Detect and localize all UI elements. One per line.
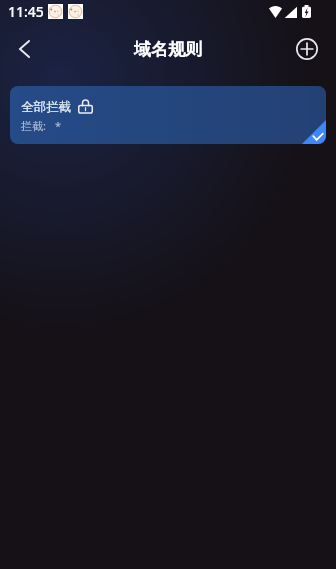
button[interactable]: Back xyxy=(4,29,44,69)
button[interactable]: Add xyxy=(287,29,327,69)
staticText: 全部拦截 xyxy=(21,99,71,115)
button[interactable]: 全部拦截 xyxy=(10,86,326,144)
staticText: 11:45 xyxy=(8,2,44,21)
staticText: 拦截: * xyxy=(21,118,62,133)
staticText: 域名规则 xyxy=(134,39,202,60)
